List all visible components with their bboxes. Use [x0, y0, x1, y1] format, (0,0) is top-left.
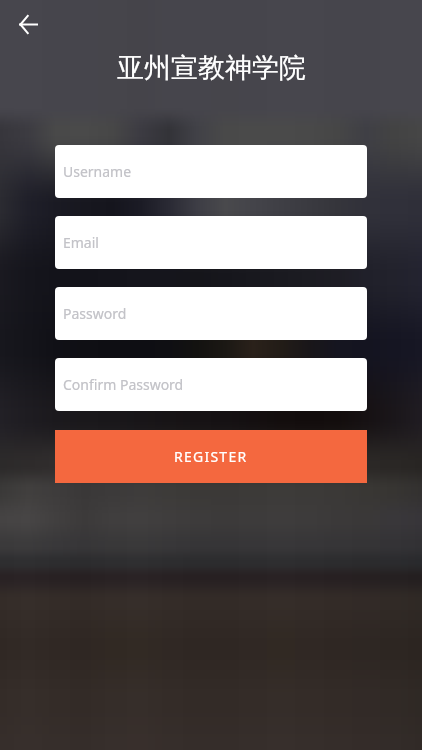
- button[interactable]: Email: [55, 216, 367, 269]
- button[interactable]: Password: [55, 287, 367, 340]
- button[interactable]: Username: [55, 145, 367, 198]
- staticText: 亚州宣教神学院: [117, 51, 306, 85]
- staticText: Email: [63, 233, 99, 252]
- staticText: REGISTER: [174, 447, 248, 466]
- staticText: Password: [63, 304, 127, 323]
- button[interactable]: REGISTER: [55, 430, 367, 483]
- button[interactable]: Confirm Password: [55, 358, 367, 411]
- button[interactable]: Back: [8, 4, 48, 44]
- staticText: Confirm Password: [63, 375, 184, 394]
- staticText: Username: [63, 162, 132, 181]
